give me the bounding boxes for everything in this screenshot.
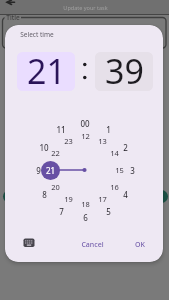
button[interactable]: 21 <box>17 52 75 91</box>
button[interactable]: 39 <box>95 52 153 91</box>
staticText: 23 <box>64 136 73 146</box>
staticText: 15 <box>115 165 124 175</box>
staticText: 19 <box>64 194 73 204</box>
staticText: 9 <box>36 165 41 175</box>
staticText: Title <box>6 13 20 21</box>
button[interactable]: Cancel <box>72 238 113 251</box>
button[interactable] <box>3 0 17 10</box>
staticText: 3 <box>130 165 135 175</box>
staticText: 00 <box>80 118 90 128</box>
button[interactable] <box>19 234 39 252</box>
staticText: 18 <box>81 199 90 209</box>
staticText: 6 <box>83 212 88 222</box>
staticText: 12 <box>81 131 90 141</box>
staticText: 14 <box>110 148 119 158</box>
staticText: 2 <box>123 142 128 152</box>
staticText: 13 <box>98 136 107 146</box>
button[interactable]: OK <box>125 238 155 251</box>
staticText: Select time <box>20 30 54 39</box>
staticText: Cancel <box>81 240 104 250</box>
staticText: Update your task <box>63 4 108 11</box>
staticText: 4 <box>123 189 128 199</box>
staticText: 1 <box>106 124 111 134</box>
staticText: 21 <box>27 52 66 87</box>
staticText: 10 <box>39 142 49 152</box>
staticText: 22 <box>51 148 60 158</box>
staticText: 5 <box>106 206 111 216</box>
staticText: 16 <box>110 182 119 192</box>
staticText: OK <box>135 240 145 250</box>
staticText: 7 <box>59 206 64 216</box>
button[interactable]: 21 <box>41 161 60 180</box>
staticText: 17 <box>98 194 107 204</box>
staticText: 20 <box>51 182 60 192</box>
staticText: 11 <box>56 124 66 134</box>
staticText: 39 <box>105 52 144 87</box>
staticText: 8 <box>42 189 47 199</box>
staticText: 21 <box>46 165 56 176</box>
